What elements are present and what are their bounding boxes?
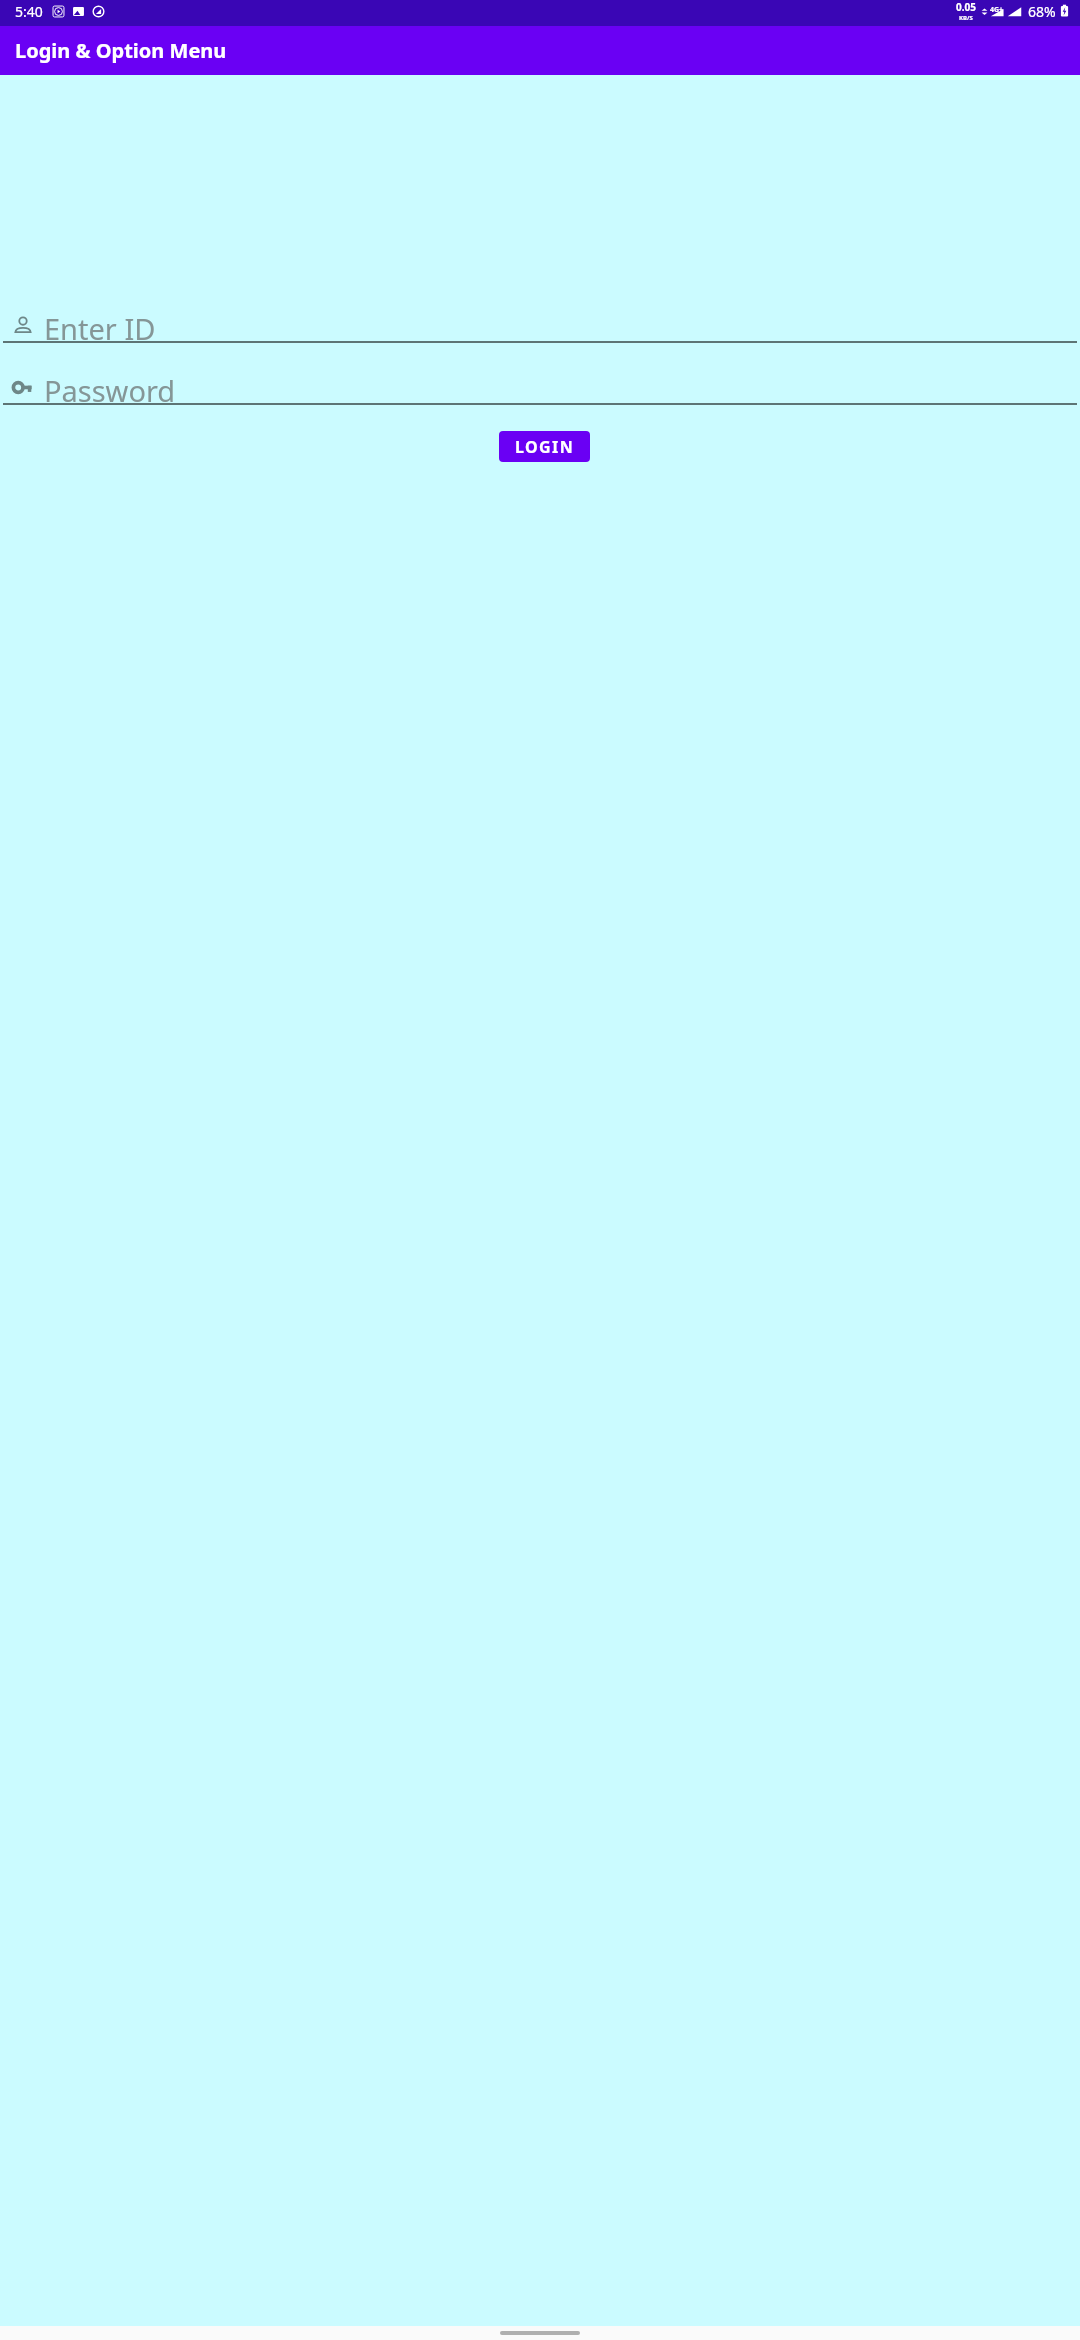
staticText: KB/S	[959, 14, 973, 22]
staticText: Password	[44, 371, 176, 403]
staticText: 0.05	[956, 0, 976, 14]
staticText: LOGIN	[515, 436, 575, 458]
button[interactable]: LOGIN	[499, 431, 590, 462]
staticText: 68%	[1028, 2, 1056, 21]
button[interactable]: User ID	[0, 309, 1080, 343]
staticText: Enter ID	[44, 309, 156, 341]
other: User ID	[11, 313, 35, 337]
staticText: Login & Option Menu	[15, 37, 227, 64]
button[interactable]: Password	[0, 371, 1080, 405]
staticText: 4G+	[990, 5, 1004, 15]
staticText: 5:40	[15, 2, 43, 21]
other: Password	[11, 375, 35, 399]
